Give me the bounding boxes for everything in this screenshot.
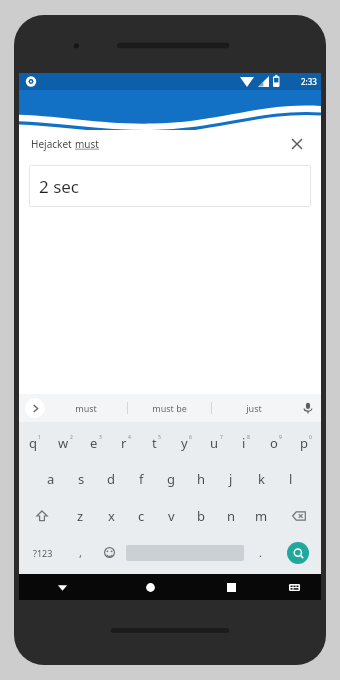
staticText: z — [77, 507, 84, 525]
staticText: a — [47, 470, 55, 488]
button[interactable]: z — [65, 497, 96, 534]
staticText: d — [107, 470, 115, 488]
button[interactable]: 2 sec — [29, 165, 311, 207]
button[interactable]: must be — [128, 394, 211, 422]
button[interactable]: v — [156, 497, 186, 534]
button[interactable]: x — [96, 497, 126, 534]
staticText: v — [168, 507, 175, 525]
staticText: u — [210, 434, 219, 452]
button[interactable]: ?123 — [19, 534, 66, 571]
staticText: 2 sec — [39, 175, 80, 198]
staticText: q — [29, 434, 37, 452]
button[interactable]: e — [81, 425, 111, 461]
button[interactable]: f — [126, 461, 156, 497]
staticText: 2:33 — [301, 76, 317, 87]
button[interactable]: , — [66, 534, 95, 571]
button[interactable]: c — [126, 497, 156, 534]
button[interactable]: r — [111, 425, 141, 461]
staticText: t — [152, 434, 157, 452]
button[interactable]: l — [276, 461, 306, 497]
button[interactable]: o — [261, 425, 291, 461]
button[interactable]: a — [35, 461, 66, 497]
staticText: 9 — [279, 434, 282, 441]
button[interactable]: b — [186, 497, 216, 534]
button[interactable]: u — [201, 425, 231, 461]
button[interactable]: Hide keyboard — [19, 574, 106, 600]
button[interactable]: j — [216, 461, 246, 497]
button[interactable]: Voice input — [295, 394, 321, 422]
staticText: g — [167, 470, 175, 488]
staticText: 3 — [99, 434, 102, 441]
button[interactable]: k — [246, 461, 276, 497]
button[interactable]: p — [291, 425, 321, 461]
button[interactable]: must — [45, 394, 127, 422]
button[interactable]: d — [96, 461, 126, 497]
button[interactable]: h — [186, 461, 216, 497]
button[interactable]: Shift — [19, 497, 65, 534]
button[interactable]: s — [66, 461, 96, 497]
button[interactable]: g — [156, 461, 186, 497]
staticText: x — [108, 507, 115, 525]
button[interactable]: t — [141, 425, 171, 461]
staticText: h — [197, 470, 206, 488]
staticText: p — [300, 434, 308, 452]
button[interactable]: Close — [285, 132, 309, 156]
staticText: e — [90, 434, 98, 452]
staticText: r — [121, 434, 127, 452]
staticText: m — [255, 507, 268, 525]
staticText: must — [75, 402, 97, 414]
button[interactable]: y — [171, 425, 201, 461]
staticText: 7 — [220, 434, 223, 441]
staticText: ?123 — [33, 547, 53, 559]
staticText: , — [79, 545, 82, 560]
staticText: b — [197, 507, 205, 525]
staticText: j — [229, 470, 233, 488]
button[interactable]: Switch keyboard — [268, 574, 321, 600]
staticText: n — [227, 507, 236, 525]
staticText: 1 — [38, 434, 41, 441]
staticText: k — [258, 470, 265, 488]
staticText: l — [289, 470, 293, 488]
button[interactable]: Backspace — [276, 497, 321, 534]
staticText: 0 — [309, 434, 312, 441]
button[interactable]: just — [212, 394, 295, 422]
staticText: must be — [152, 402, 187, 414]
staticText: y — [181, 434, 188, 452]
button[interactable]: Recent apps — [195, 574, 268, 600]
staticText: Hejacket — [31, 137, 75, 151]
staticText: s — [78, 470, 85, 488]
button[interactable]: q — [19, 425, 50, 461]
button[interactable]: . — [246, 534, 275, 571]
button[interactable]: m — [246, 497, 276, 534]
staticText: 5 — [158, 434, 161, 441]
staticText: 8 — [247, 434, 250, 441]
button[interactable]: Search — [287, 542, 309, 564]
staticText: must — [75, 137, 99, 151]
staticText: . — [259, 545, 262, 560]
button[interactable]: w — [50, 425, 81, 461]
staticText: c — [138, 507, 145, 525]
staticText: w — [58, 434, 69, 452]
button[interactable]: Home — [106, 574, 195, 600]
staticText: i — [242, 434, 246, 452]
button[interactable]: n — [216, 497, 246, 534]
button[interactable]: Emoji — [95, 534, 124, 571]
staticText: o — [270, 434, 278, 452]
staticText: just — [246, 402, 262, 414]
button[interactable]: i — [231, 425, 261, 461]
staticText: 4 — [128, 434, 131, 441]
staticText: 2 — [70, 434, 73, 441]
staticText: 6 — [189, 434, 192, 441]
staticText: f — [139, 470, 144, 488]
button[interactable]: More suggestions — [25, 398, 45, 418]
